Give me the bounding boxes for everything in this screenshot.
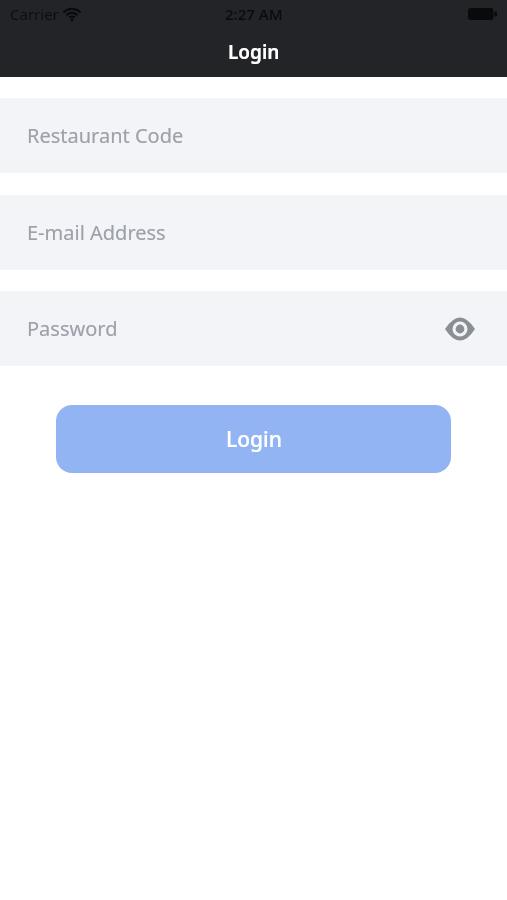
staticText: Restaurant Code bbox=[27, 122, 475, 149]
staticText: Carrier bbox=[10, 4, 59, 24]
button[interactable]: Login bbox=[56, 405, 451, 473]
button[interactable]: Restaurant Code bbox=[0, 98, 507, 173]
staticText: 2:27 AM bbox=[225, 4, 283, 24]
staticText: Password bbox=[27, 315, 445, 342]
staticText: Login bbox=[228, 39, 280, 65]
staticText: Login bbox=[226, 425, 282, 454]
button[interactable]: E-mail Address bbox=[0, 195, 507, 270]
staticText: E-mail Address bbox=[27, 219, 475, 246]
button[interactable] bbox=[445, 318, 475, 340]
button[interactable]: Password bbox=[0, 291, 507, 366]
